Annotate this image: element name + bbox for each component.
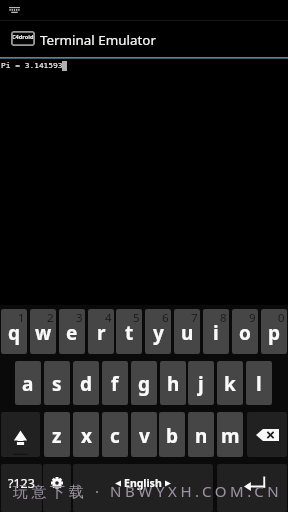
staticText: d	[80, 371, 93, 397]
staticText: s	[52, 371, 62, 397]
button[interactable]: 8	[203, 309, 229, 354]
button[interactable]: g	[131, 361, 157, 405]
staticText: n	[195, 423, 208, 449]
staticText: t	[125, 320, 134, 346]
staticText: 8	[220, 310, 227, 326]
button[interactable]: 1	[1, 309, 27, 354]
button[interactable]: 2	[30, 309, 56, 354]
staticText: u	[181, 320, 194, 346]
staticText: 5	[133, 310, 140, 326]
staticText: r	[97, 320, 106, 346]
staticText: 9	[249, 310, 256, 326]
button[interactable]: s	[44, 361, 70, 405]
staticText: 7	[191, 310, 198, 326]
button[interactable]: C4droid Terminal Emulator	[11, 31, 35, 46]
staticText: 玩意下载 · NBWYXH.COM.CN	[13, 481, 283, 501]
staticText: ?123	[8, 475, 35, 492]
button[interactable]: m	[217, 412, 243, 457]
staticText: c	[110, 423, 120, 449]
staticText: 3	[76, 310, 83, 326]
staticText: j	[198, 371, 204, 397]
staticText: 6	[162, 310, 169, 326]
button[interactable]: 5	[116, 309, 142, 354]
staticText: z	[52, 423, 62, 449]
staticText: y	[153, 320, 164, 346]
staticText: 1	[18, 310, 25, 326]
button[interactable]: k	[217, 361, 243, 405]
button[interactable]: 0	[261, 309, 287, 354]
button[interactable]: d	[73, 361, 99, 405]
staticText: k	[224, 371, 236, 397]
staticText: 2	[47, 310, 54, 326]
button[interactable]: v	[131, 412, 157, 457]
button[interactable]: 9	[232, 309, 258, 354]
button[interactable]: 3	[59, 309, 85, 354]
staticText: x	[81, 423, 92, 449]
button[interactable]: a	[15, 361, 41, 405]
staticText: a	[22, 371, 34, 397]
staticText: i	[213, 320, 219, 346]
button[interactable]: 4	[88, 309, 114, 354]
staticText: e	[66, 320, 78, 346]
button[interactable]: Settings	[43, 464, 71, 512]
button[interactable]: English	[73, 464, 213, 512]
button[interactable]: j	[188, 361, 214, 405]
button[interactable]: x	[73, 412, 99, 457]
staticText: v	[139, 423, 150, 449]
staticText: f	[111, 371, 119, 397]
staticText: 4	[105, 310, 112, 326]
button[interactable]: z	[44, 412, 70, 457]
staticText: o	[239, 320, 251, 346]
button[interactable]: Backspace	[247, 412, 287, 457]
staticText: q	[8, 320, 21, 346]
staticText: Pi = 3.141593	[1, 60, 63, 71]
button[interactable]: f	[102, 361, 128, 405]
staticText: h	[167, 371, 180, 397]
button[interactable]: Enter	[217, 464, 287, 512]
button[interactable]: ?123	[1, 464, 42, 512]
button[interactable]: Shift	[1, 412, 40, 457]
button[interactable]: b	[159, 412, 185, 457]
staticText: 0	[278, 310, 285, 326]
button[interactable]: h	[160, 361, 186, 405]
staticText: C4droid	[12, 33, 34, 41]
staticText: English	[124, 476, 162, 490]
staticText: Terminal Emulator	[40, 31, 156, 49]
staticText: p	[268, 320, 281, 346]
button[interactable]: l	[246, 361, 272, 405]
button[interactable]: c	[102, 412, 128, 457]
staticText: l	[256, 371, 262, 397]
staticText: b	[166, 423, 179, 449]
staticText: g	[138, 371, 151, 397]
staticText: w	[35, 320, 52, 346]
button[interactable]: n	[188, 412, 214, 457]
button[interactable]: 7	[174, 309, 200, 354]
button[interactable]: 6	[145, 309, 171, 354]
staticText: m	[221, 423, 240, 449]
